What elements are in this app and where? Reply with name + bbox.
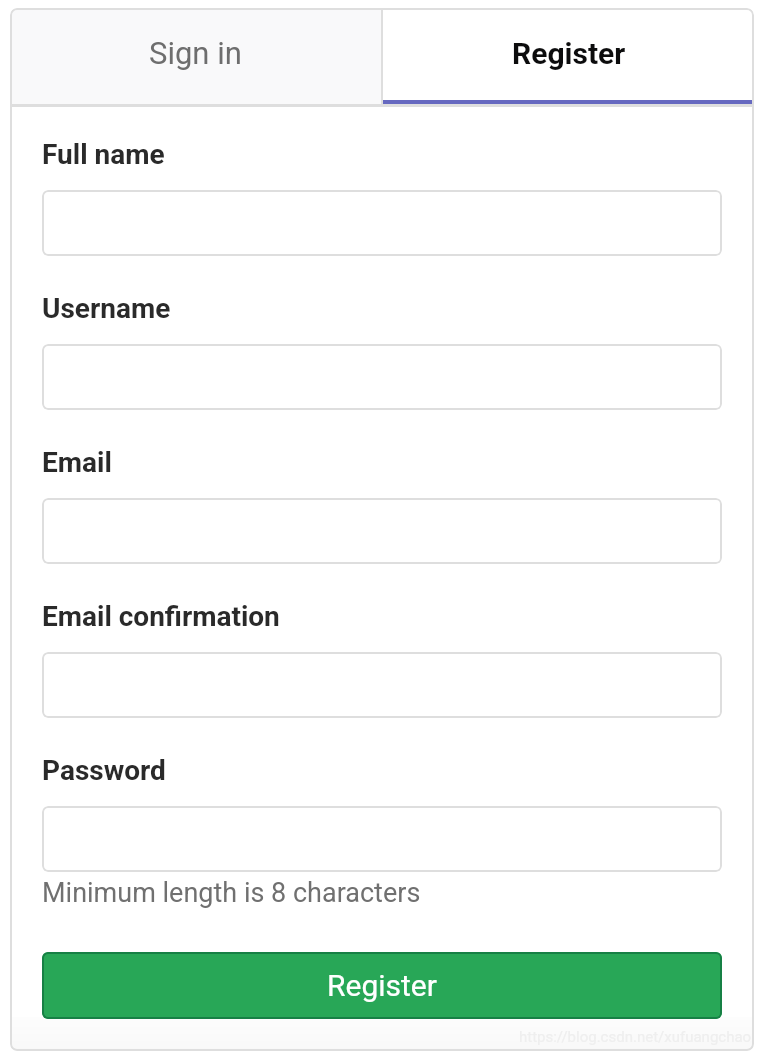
- button[interactable]: Register: [383, 8, 754, 104]
- staticText: Username: [42, 292, 171, 325]
- staticText: Register: [512, 36, 626, 71]
- staticText: Full name: [42, 138, 165, 171]
- button[interactable]: Password: [42, 806, 722, 872]
- button[interactable]: Full name: [42, 190, 722, 256]
- button[interactable]: Register: [42, 952, 722, 1019]
- staticText: Minimum length is 8 characters: [42, 877, 421, 909]
- staticText: https://blog.csdn.net/xufuangchao: [519, 1028, 752, 1046]
- button[interactable]: Email confirmation: [42, 652, 722, 718]
- staticText: Password: [42, 754, 166, 787]
- staticText: Sign in: [149, 35, 242, 71]
- staticText: Email confirmation: [42, 600, 280, 633]
- button[interactable]: Sign in: [10, 8, 381, 104]
- button[interactable]: Email: [42, 498, 722, 564]
- button[interactable]: Username: [42, 344, 722, 410]
- staticText: Email: [42, 446, 112, 479]
- staticText: Register: [327, 968, 437, 1003]
